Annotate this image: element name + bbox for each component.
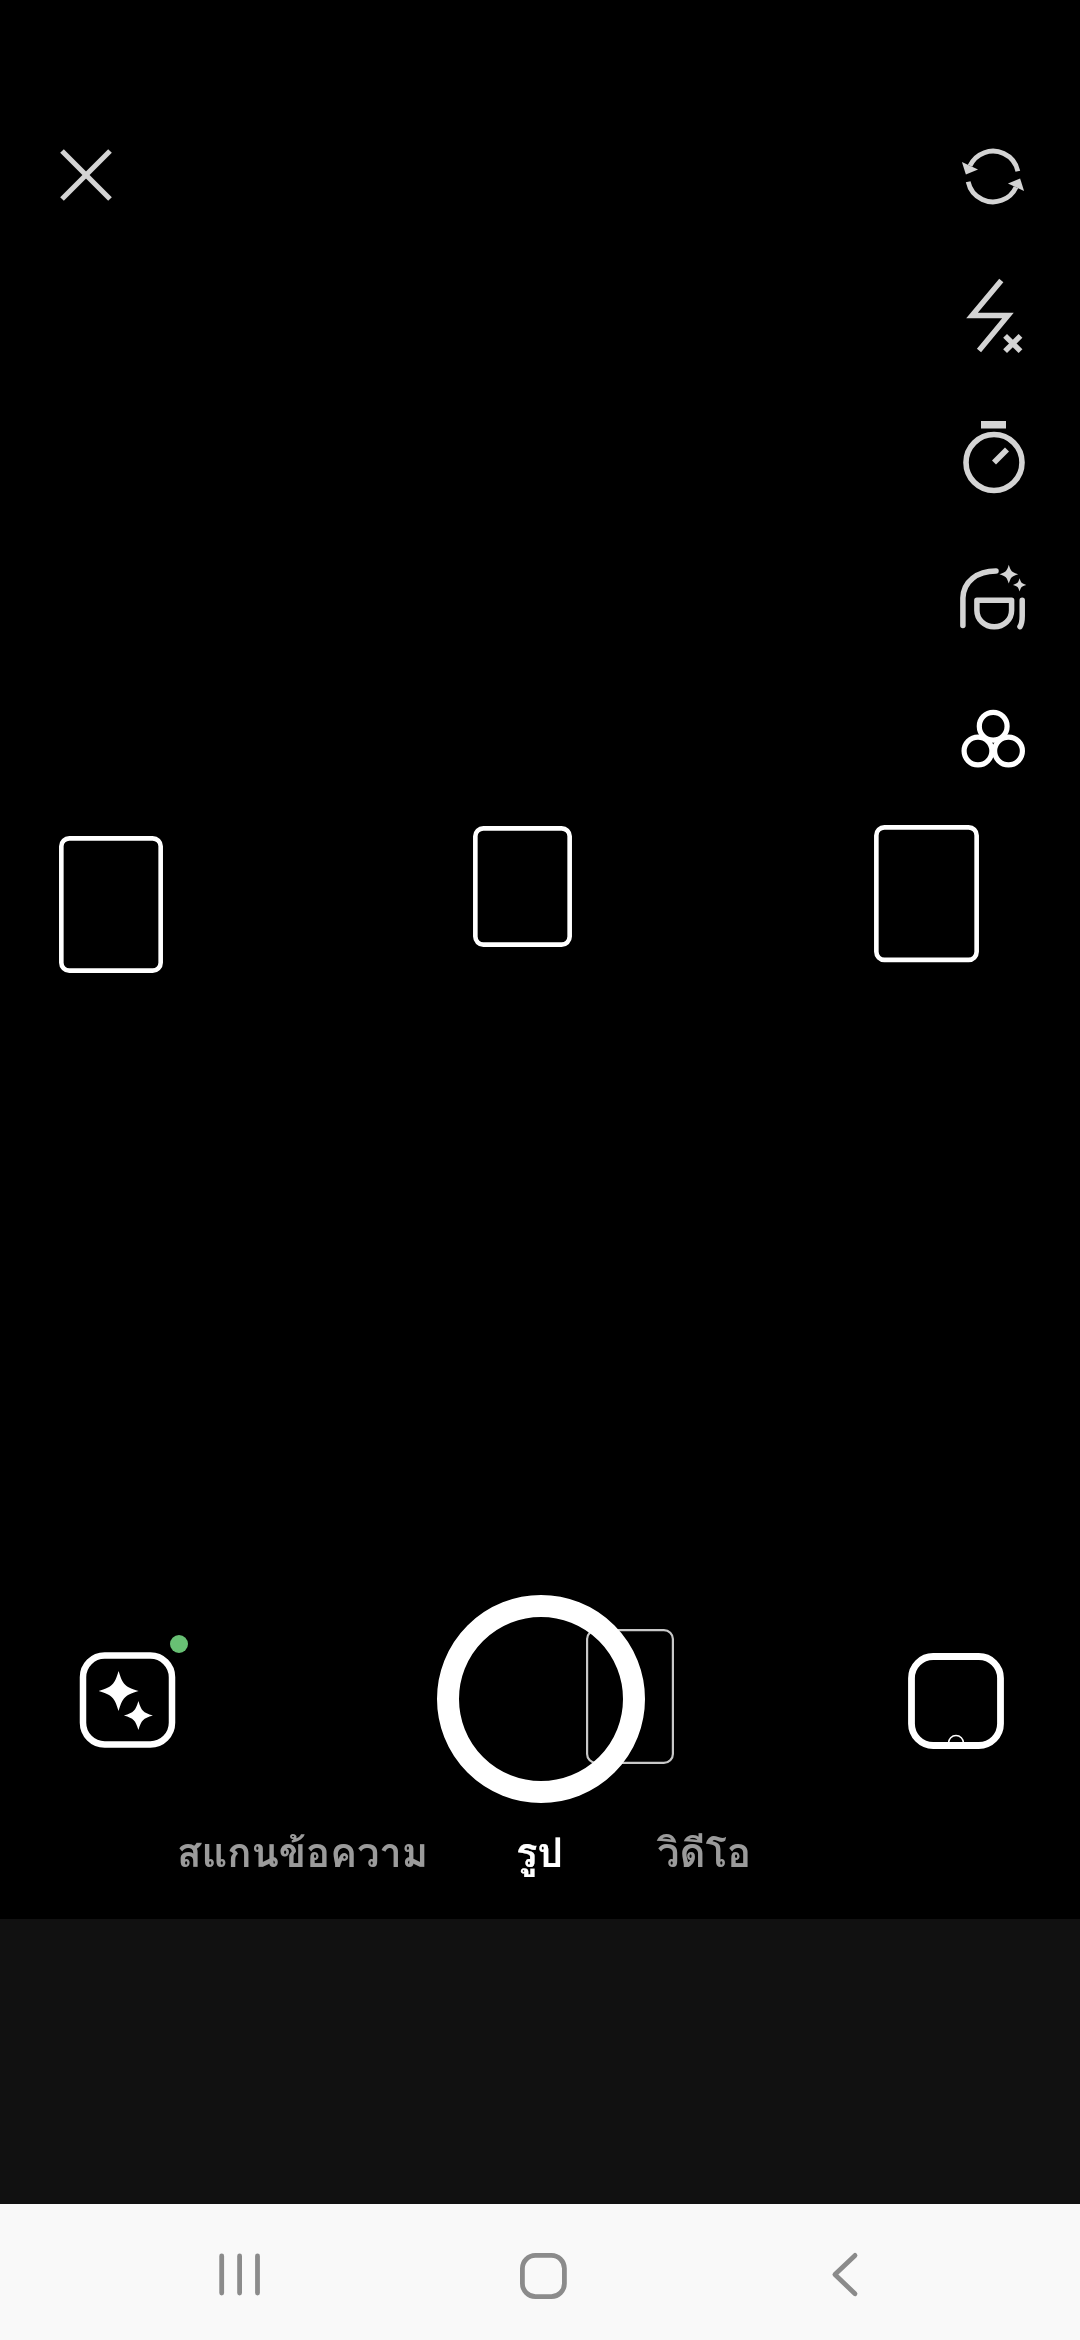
button[interactable]: Recents <box>200 2235 280 2315</box>
button[interactable]: รูป <box>494 1815 585 1891</box>
staticText: วิดีโอ <box>657 1821 751 1885</box>
staticText: สแกนข้อความ <box>177 1821 429 1885</box>
button[interactable]: สแกนข้อความ <box>155 1815 451 1891</box>
button[interactable]: Scene optimizer <box>72 1630 192 1755</box>
button[interactable]: Aspect ratio 1:1 <box>463 816 582 957</box>
button[interactable]: Switch camera <box>948 131 1038 221</box>
staticText: รูป <box>516 1821 563 1885</box>
button[interactable]: Aspect ratio full <box>864 815 989 972</box>
button[interactable]: Beauty <box>948 556 1038 646</box>
button[interactable]: Flash off <box>948 271 1038 361</box>
button[interactable]: วิดีโอ <box>635 1815 773 1891</box>
button[interactable]: Filters <box>948 700 1038 790</box>
button[interactable]: Gallery <box>902 1647 1010 1755</box>
button[interactable]: Close <box>50 139 122 211</box>
button[interactable]: Back <box>805 2235 885 2315</box>
button[interactable]: Timer <box>948 417 1038 507</box>
button[interactable]: Take photo <box>431 1589 651 1809</box>
button[interactable]: Aspect ratio 3:4 <box>49 826 173 983</box>
button[interactable]: Home <box>500 2235 580 2315</box>
